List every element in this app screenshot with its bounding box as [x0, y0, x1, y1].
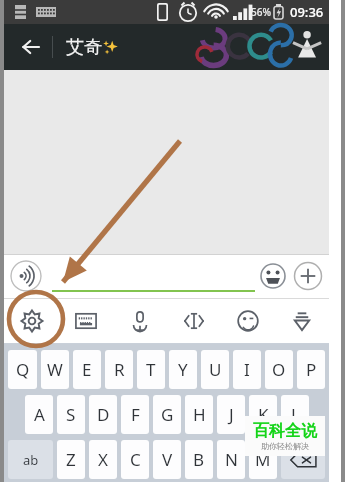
- staticText: D: [97, 403, 110, 426]
- staticText: W: [47, 358, 63, 381]
- staticText: O: [272, 358, 286, 381]
- button[interactable]: U: [201, 350, 229, 389]
- button[interactable]: Text editing: [167, 298, 221, 344]
- staticText: F: [131, 403, 140, 426]
- staticText: B: [193, 448, 205, 471]
- staticText: 艾奇: [66, 36, 102, 59]
- button[interactable]: Z: [57, 440, 85, 479]
- button[interactable]: Back: [12, 28, 50, 66]
- staticText: G: [161, 403, 174, 426]
- button[interactable]: S: [57, 395, 85, 434]
- staticText: J: [229, 403, 234, 426]
- staticText: C: [130, 448, 141, 471]
- button[interactable]: T: [137, 350, 165, 389]
- button[interactable]: K: [249, 395, 277, 434]
- button[interactable]: E: [73, 350, 101, 389]
- button[interactable]: D: [89, 395, 117, 434]
- button[interactable]: V: [153, 440, 181, 479]
- staticText: K: [258, 403, 269, 426]
- button[interactable]: Voice: [113, 298, 167, 344]
- staticText: R: [114, 358, 125, 381]
- staticText: V: [162, 448, 173, 471]
- staticText: Q: [16, 358, 30, 381]
- button[interactable]: O: [265, 350, 293, 389]
- staticText: 百科全说: [253, 421, 317, 441]
- button[interactable]: G: [153, 395, 181, 434]
- button[interactable]: A: [25, 395, 53, 434]
- button[interactable]: I: [233, 350, 261, 389]
- button[interactable]: Emoji: [259, 262, 287, 290]
- staticText: I: [244, 358, 250, 381]
- button[interactable]: F: [121, 395, 149, 434]
- staticText: T: [146, 358, 156, 381]
- button[interactable]: R: [105, 350, 133, 389]
- button[interactable]: X: [89, 440, 117, 479]
- button[interactable]: Keyboard layout: [59, 298, 113, 344]
- staticText: 09:36: [290, 3, 324, 21]
- staticText: U: [209, 358, 222, 381]
- button[interactable]: ab: [8, 440, 53, 479]
- button[interactable]: Y: [169, 350, 197, 389]
- button[interactable]: Hide keyboard: [275, 298, 329, 344]
- button[interactable]: M: [249, 440, 277, 479]
- staticText: X: [98, 448, 108, 471]
- button[interactable]: Stickers: [221, 298, 275, 344]
- staticText: S: [66, 403, 76, 426]
- button[interactable]: Settings: [4, 298, 59, 344]
- button[interactable]: L: [281, 395, 309, 434]
- staticText: E: [82, 358, 92, 381]
- staticText: 百度ID: Sanpitt: [229, 69, 313, 85]
- staticText: L: [291, 403, 300, 426]
- staticText: ab: [23, 451, 39, 469]
- button[interactable]: W: [41, 350, 69, 389]
- staticText: Y: [178, 358, 188, 381]
- staticText: H: [193, 403, 206, 426]
- button[interactable]: Add attachment: [293, 261, 323, 291]
- button[interactable]: N: [217, 440, 245, 479]
- staticText: M: [255, 448, 271, 471]
- button[interactable]: B: [185, 440, 213, 479]
- staticText: P: [306, 358, 317, 381]
- button[interactable]: C: [121, 440, 149, 479]
- staticText: 56%: [251, 5, 271, 19]
- button[interactable]: P: [297, 350, 325, 389]
- button[interactable]: Voice input: [10, 260, 42, 292]
- button[interactable]: Q: [8, 350, 37, 389]
- staticText: 助你轻松解决: [261, 441, 309, 451]
- button[interactable]: H: [185, 395, 213, 434]
- staticText: A: [34, 403, 45, 426]
- button[interactable]: [52, 254, 255, 298]
- staticText: N: [225, 448, 238, 471]
- staticText: Z: [66, 448, 76, 471]
- button[interactable]: Backspace: [281, 440, 325, 479]
- button[interactable]: J: [217, 395, 245, 434]
